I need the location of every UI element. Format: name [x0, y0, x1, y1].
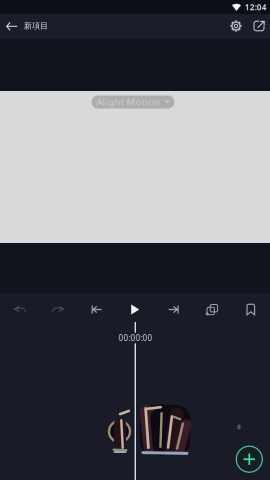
button[interactable]: Redo [39, 294, 77, 324]
staticText: 00:00:00 [118, 333, 152, 343]
staticText: Alight Motion [96, 96, 160, 108]
button[interactable]: Skip to end [155, 294, 193, 324]
button[interactable]: Settings [224, 14, 248, 38]
button[interactable]: Export [247, 14, 270, 38]
button[interactable]: Back [0, 14, 24, 38]
button[interactable]: Bookmark [232, 294, 270, 324]
button[interactable]: Play [116, 294, 154, 324]
button[interactable]: Undo [1, 294, 39, 324]
button[interactable]: Add layer [232, 442, 266, 476]
staticText: 12:04 [245, 2, 267, 12]
staticText: 新項目 [24, 21, 48, 31]
button[interactable]: Skip to start [78, 294, 116, 324]
button[interactable]: Duplicate layer [193, 294, 231, 324]
